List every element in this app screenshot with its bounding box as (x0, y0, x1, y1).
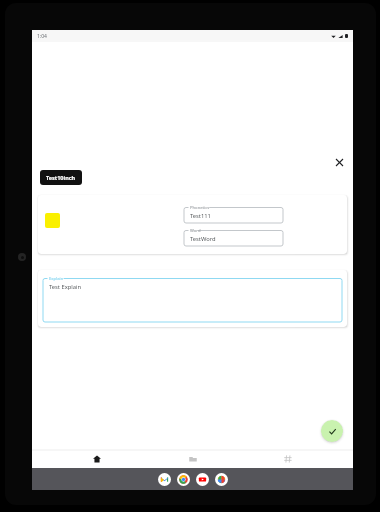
button[interactable]: Pick colour (45, 213, 60, 228)
button[interactable]: Explain (43, 275, 342, 322)
button[interactable]: Test10inch (40, 170, 82, 185)
staticText: Test Explain (49, 283, 82, 291)
button[interactable]: Explain (38, 270, 347, 327)
button[interactable]: Home (67, 450, 127, 468)
button[interactable]: Gmail (158, 473, 171, 486)
staticText: 1:04 (37, 33, 47, 40)
button[interactable]: Folders (163, 450, 223, 468)
button[interactable]: Close (329, 152, 349, 172)
staticText: Word (190, 228, 201, 234)
button[interactable]: Word (184, 227, 283, 246)
button[interactable]: Pick colour (38, 195, 347, 254)
staticText: Explain (49, 276, 64, 282)
button[interactable]: Phonetics (184, 204, 283, 223)
staticText: Phonetics (190, 205, 210, 211)
button[interactable]: Grid (258, 450, 318, 468)
staticText: Test111 (190, 212, 211, 220)
staticText: Test10inch (46, 174, 76, 181)
staticText: TestWord (190, 235, 216, 243)
button[interactable]: Photos (215, 473, 228, 486)
button[interactable]: Chrome (177, 473, 190, 486)
button[interactable]: Confirm (321, 420, 343, 442)
button[interactable]: YouTube (196, 473, 209, 486)
